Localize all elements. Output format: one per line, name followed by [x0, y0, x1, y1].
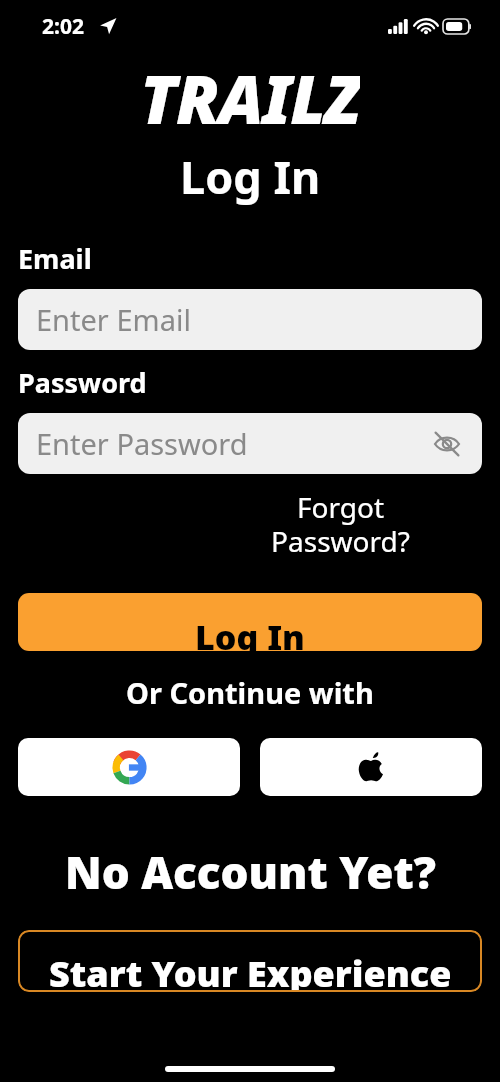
staticText: Forgot Password?	[271, 488, 410, 561]
button[interactable]: Log In	[18, 593, 482, 651]
button[interactable]: Enter Email	[18, 289, 482, 350]
button[interactable]: Enter Password	[18, 413, 482, 474]
button[interactable]: Forgot Password?	[271, 488, 410, 561]
staticText: Password	[18, 364, 147, 401]
button[interactable]: Continue with Google	[18, 738, 240, 796]
staticText: No Account Yet?	[65, 842, 436, 902]
button[interactable]: Show password	[430, 427, 464, 461]
staticText: Log In	[195, 614, 305, 651]
staticText: Email	[18, 240, 92, 277]
staticText: 2:02	[42, 12, 84, 41]
staticText: Start Your Experience	[49, 949, 452, 992]
staticText: Or Continue with	[126, 673, 374, 712]
staticText: TRAILZ	[140, 52, 360, 140]
staticText: Enter Email	[36, 300, 191, 339]
staticText: Enter Password	[36, 424, 248, 463]
button[interactable]: Continue with Apple	[260, 738, 482, 796]
staticText: Log In	[180, 146, 321, 207]
button[interactable]: Start Your Experience	[18, 930, 482, 992]
